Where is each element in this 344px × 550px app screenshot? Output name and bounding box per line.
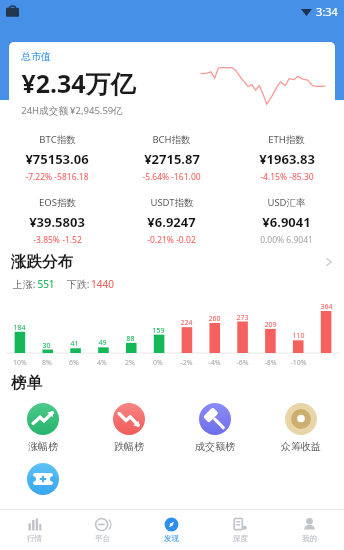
staticText: ¥2715.87 bbox=[144, 150, 200, 168]
other: 成交额榜 bbox=[199, 403, 231, 435]
staticText: 273 bbox=[236, 313, 249, 323]
button[interactable]: USD汇率 bbox=[229, 196, 344, 246]
staticText: 榜单 bbox=[11, 373, 42, 393]
staticText: 涨幅榜 bbox=[28, 440, 58, 453]
staticText: 364 bbox=[320, 302, 333, 312]
staticText: 众筹收益 bbox=[281, 440, 321, 453]
button[interactable]: 发现 bbox=[137, 510, 206, 550]
staticText: ¥39.5803 bbox=[29, 213, 85, 231]
staticText: ¥6.9041 bbox=[262, 213, 311, 231]
button[interactable]: USDT指数 bbox=[114, 196, 229, 246]
other: 跌幅榜 bbox=[113, 403, 145, 435]
staticText: 上涨: bbox=[11, 277, 37, 291]
button[interactable]: EOS指数 bbox=[0, 196, 114, 246]
button[interactable]: 深度 bbox=[206, 510, 275, 550]
button[interactable]: 成交额榜 bbox=[172, 401, 258, 455]
staticText: 成交额榜 bbox=[195, 440, 235, 453]
staticText: 4% bbox=[97, 358, 107, 368]
staticText: EOS指数 bbox=[39, 196, 76, 209]
staticText: -3.85% -1.52 bbox=[33, 234, 82, 246]
staticText: -8% bbox=[264, 358, 277, 368]
staticText: 行情 bbox=[27, 534, 42, 543]
staticText: 8% bbox=[42, 358, 52, 368]
staticText: 涨跌分布 bbox=[11, 252, 73, 272]
button[interactable]: 跌幅榜 bbox=[86, 401, 172, 455]
other: 涨幅榜 bbox=[27, 403, 59, 435]
staticText: BCH指数 bbox=[152, 133, 191, 146]
staticText: -0.21% -0.02 bbox=[147, 234, 196, 246]
staticText: -2% bbox=[180, 358, 193, 368]
staticText: 10% bbox=[13, 358, 27, 368]
staticText: 下跌: bbox=[65, 277, 91, 291]
other: 众筹收益 bbox=[285, 403, 317, 435]
staticText: 0.00% 6.9041 bbox=[260, 234, 313, 246]
button[interactable]: BCH指数 bbox=[114, 133, 229, 183]
staticText: 41 bbox=[70, 339, 79, 349]
button[interactable]: 行情 bbox=[0, 510, 68, 550]
staticText: 发现 bbox=[164, 534, 179, 543]
staticText: USDT指数 bbox=[150, 196, 194, 209]
staticText: 209 bbox=[264, 320, 277, 330]
button[interactable]: 平台 bbox=[68, 510, 137, 550]
staticText: 159 bbox=[152, 326, 165, 336]
staticText: USD汇率 bbox=[267, 196, 306, 209]
staticText: 1440 bbox=[91, 277, 114, 291]
staticText: 0% bbox=[153, 358, 163, 368]
other: Ticket bbox=[27, 463, 59, 495]
staticText: 110 bbox=[292, 331, 305, 341]
button[interactable]: 涨跌分布 bbox=[0, 252, 344, 272]
staticText: 260 bbox=[208, 314, 221, 324]
button[interactable]: Ticket bbox=[0, 461, 86, 497]
staticText: 3:34 bbox=[316, 4, 338, 19]
staticText: 6% bbox=[69, 358, 79, 368]
other: More bbox=[323, 256, 335, 268]
staticText: 我的 bbox=[302, 534, 317, 543]
button[interactable]: 我的 bbox=[275, 510, 344, 550]
staticText: ETH指数 bbox=[268, 133, 305, 146]
staticText: -7.22% -5816.18 bbox=[25, 171, 89, 183]
staticText: 30 bbox=[42, 341, 51, 351]
staticText: 551 bbox=[37, 277, 55, 291]
staticText: 88 bbox=[126, 334, 135, 344]
staticText: -6% bbox=[236, 358, 249, 368]
staticText: -4% bbox=[208, 358, 221, 368]
staticText: 深度 bbox=[233, 534, 248, 543]
staticText: ¥1963.83 bbox=[259, 150, 315, 168]
staticText: 跌幅榜 bbox=[114, 440, 144, 453]
staticText: 总市值 bbox=[21, 50, 51, 63]
staticText: ¥2.34万亿 bbox=[21, 66, 136, 100]
button[interactable]: BTC指数 bbox=[0, 133, 114, 183]
button[interactable]: 涨幅榜 bbox=[0, 401, 86, 455]
button[interactable]: 众筹收益 bbox=[258, 401, 344, 455]
staticText: 平台 bbox=[95, 534, 110, 543]
staticText: 224 bbox=[180, 318, 193, 328]
staticText: -5.64% -161.00 bbox=[142, 171, 201, 183]
staticText: 2% bbox=[125, 358, 135, 368]
staticText: ¥6.9247 bbox=[147, 213, 196, 231]
button[interactable]: ETH指数 bbox=[229, 133, 344, 183]
staticText: BTC指数 bbox=[39, 133, 76, 146]
staticText: 184 bbox=[13, 323, 26, 333]
button[interactable]: 总市值 bbox=[9, 42, 335, 120]
staticText: 24H成交额 ¥2,945.59亿 bbox=[21, 104, 123, 117]
staticText: ¥75153.06 bbox=[25, 150, 89, 168]
staticText: -4.15% -85.30 bbox=[260, 171, 314, 183]
staticText: 49 bbox=[98, 338, 107, 348]
staticText: -10% bbox=[290, 358, 307, 368]
